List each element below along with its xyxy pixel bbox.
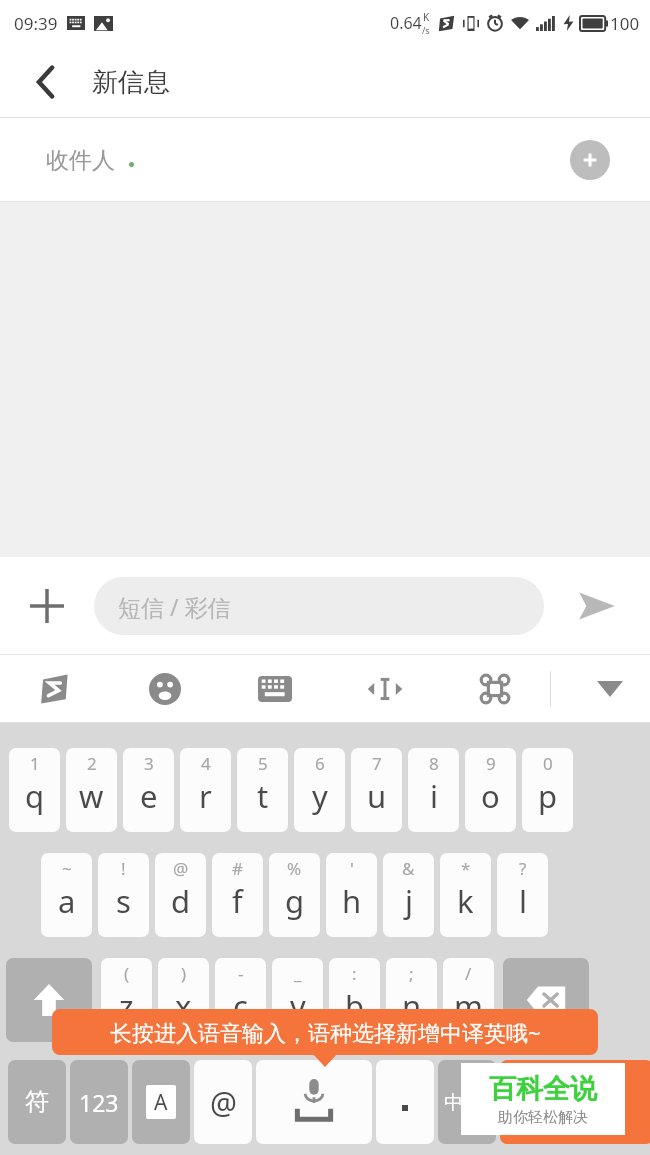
- staticText: 2: [87, 752, 97, 775]
- button[interactable]: [376, 1060, 434, 1144]
- staticText: o: [481, 775, 500, 817]
- staticText: s: [116, 880, 131, 922]
- staticText: j: [405, 880, 413, 922]
- staticText: 100: [610, 12, 640, 35]
- staticText: a: [58, 880, 76, 922]
- button[interactable]: 7: [351, 748, 402, 832]
- staticText: g: [285, 880, 305, 922]
- staticText: /s: [422, 24, 430, 36]
- staticText: /: [465, 962, 472, 985]
- button[interactable]: 1: [9, 748, 60, 832]
- button[interactable]: Send: [544, 557, 650, 655]
- staticText: &: [402, 857, 415, 880]
- button[interactable]: -: [215, 958, 266, 1042]
- button[interactable]: 短信 / 彩信: [94, 577, 544, 635]
- button[interactable]: &: [383, 853, 434, 937]
- staticText: 收件人: [46, 146, 115, 175]
- button[interactable]: 2: [66, 748, 117, 832]
- button[interactable]: Cursor move: [330, 655, 440, 723]
- button[interactable]: /: [443, 958, 494, 1042]
- staticText: e: [140, 775, 158, 817]
- staticText: 09:39: [14, 12, 58, 35]
- staticText: c: [233, 985, 248, 1027]
- button[interactable]: 0: [522, 748, 573, 832]
- button[interactable]: 5: [237, 748, 288, 832]
- button[interactable]: 符: [8, 1060, 66, 1144]
- button[interactable]: 123: [70, 1060, 128, 1144]
- staticText: q: [25, 775, 45, 817]
- button[interactable]: (: [101, 958, 152, 1042]
- staticText: f: [232, 880, 243, 922]
- button[interactable]: Keyboard layout: [220, 655, 330, 723]
- staticText: 新信息: [92, 66, 170, 99]
- staticText: :: [352, 962, 357, 985]
- staticText: d: [171, 880, 191, 922]
- button[interactable]: Sogou input: [0, 655, 110, 723]
- staticText: -: [238, 962, 244, 985]
- button[interactable]: #: [212, 853, 263, 937]
- staticText: x: [175, 985, 192, 1027]
- button[interactable]: ': [326, 853, 377, 937]
- button[interactable]: 9: [465, 748, 516, 832]
- button[interactable]: ): [158, 958, 209, 1042]
- button[interactable]: Language: [132, 1060, 190, 1144]
- staticText: 3: [144, 752, 154, 775]
- button[interactable]: !: [98, 853, 149, 937]
- staticText: A: [154, 1088, 168, 1117]
- staticText: 中/英: [444, 1089, 490, 1115]
- staticText: k: [457, 880, 474, 922]
- staticText: _: [294, 962, 302, 985]
- staticText: i: [430, 775, 438, 817]
- staticText: 长按进入语音输入，语种选择新增中译英哦~: [110, 1017, 541, 1047]
- staticText: n: [402, 985, 422, 1027]
- staticText: b: [345, 985, 365, 1027]
- staticText: K: [423, 10, 430, 24]
- staticText: 4: [201, 752, 211, 775]
- button[interactable]: ~: [41, 853, 92, 937]
- button[interactable]: *: [440, 853, 491, 937]
- staticText: #: [232, 857, 243, 880]
- button[interactable]: @: [155, 853, 206, 937]
- staticText: 助你轻松解决: [498, 1108, 588, 1127]
- staticText: %: [287, 857, 302, 880]
- staticText: !: [121, 857, 126, 880]
- staticText: v: [290, 985, 306, 1027]
- button[interactable]: Space, long press for voice input: [256, 1060, 372, 1144]
- staticText: h: [342, 880, 362, 922]
- button[interactable]: 中/英: [438, 1060, 496, 1144]
- staticText: 7: [372, 752, 382, 775]
- staticText: t: [257, 775, 269, 817]
- button[interactable]: Backspace: [503, 958, 589, 1042]
- button[interactable]: Hide keyboard: [570, 655, 650, 723]
- button[interactable]: ?: [497, 853, 548, 937]
- staticText: 8: [429, 752, 439, 775]
- button[interactable]: 3: [123, 748, 174, 832]
- staticText: ~: [62, 857, 72, 880]
- button[interactable]: Attach: [0, 557, 94, 655]
- button[interactable]: Add recipient: [570, 140, 610, 180]
- staticText: 6: [315, 752, 325, 775]
- button[interactable]: Tools: [440, 655, 550, 723]
- button[interactable]: Back: [0, 46, 92, 118]
- button[interactable]: Shift: [6, 958, 92, 1042]
- button[interactable]: :: [329, 958, 380, 1042]
- staticText: z: [119, 985, 134, 1027]
- staticText: l: [519, 880, 527, 922]
- button[interactable]: ;: [386, 958, 437, 1042]
- staticText: ): [181, 962, 187, 985]
- button[interactable]: Emoji: [110, 655, 220, 723]
- button[interactable]: 6: [294, 748, 345, 832]
- button[interactable]: @: [194, 1060, 252, 1144]
- button[interactable]: 8: [408, 748, 459, 832]
- staticText: 1: [30, 752, 40, 775]
- staticText: 符: [25, 1087, 49, 1117]
- staticText: *: [461, 857, 471, 880]
- button[interactable]: _: [272, 958, 323, 1042]
- staticText: y: [312, 775, 328, 817]
- button[interactable]: 4: [180, 748, 231, 832]
- staticText: @: [210, 1082, 237, 1123]
- staticText: r: [199, 775, 212, 817]
- button[interactable]: %: [269, 853, 320, 937]
- button[interactable]: Enter: [500, 1060, 650, 1144]
- staticText: m: [454, 985, 483, 1027]
